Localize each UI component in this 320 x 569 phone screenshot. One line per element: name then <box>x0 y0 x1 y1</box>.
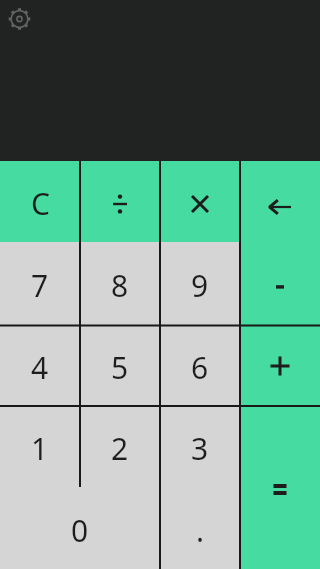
button[interactable] <box>80 161 160 242</box>
staticText: 1 <box>31 428 49 469</box>
button[interactable]: 8 <box>80 242 160 325</box>
staticText: 2 <box>111 428 129 469</box>
staticText: 8 <box>111 265 129 306</box>
staticText: 7 <box>31 265 49 306</box>
staticText: 5 <box>111 347 129 388</box>
button[interactable] <box>240 242 320 325</box>
button[interactable]: 6 <box>160 325 240 406</box>
button[interactable]: . <box>160 487 240 569</box>
staticText: 6 <box>191 347 209 388</box>
staticText: 4 <box>31 347 49 388</box>
button[interactable]: 0 <box>0 487 160 569</box>
button[interactable]: 5 <box>80 325 160 406</box>
button[interactable]: C <box>0 161 80 242</box>
button[interactable] <box>240 325 320 406</box>
button[interactable] <box>6 6 33 33</box>
button[interactable]: 2 <box>80 406 160 487</box>
staticText: 0 <box>71 510 89 551</box>
staticText: . <box>196 510 205 551</box>
button[interactable]: 7 <box>0 242 80 325</box>
staticText: 3 <box>191 428 209 469</box>
staticText: C <box>31 183 50 224</box>
button[interactable] <box>160 161 240 242</box>
button[interactable] <box>240 406 320 569</box>
staticText: 9 <box>191 265 209 306</box>
button[interactable]: 9 <box>160 242 240 325</box>
button[interactable]: 3 <box>160 406 240 487</box>
button[interactable] <box>240 161 320 242</box>
button[interactable]: 1 <box>0 406 80 487</box>
button[interactable]: 4 <box>0 325 80 406</box>
